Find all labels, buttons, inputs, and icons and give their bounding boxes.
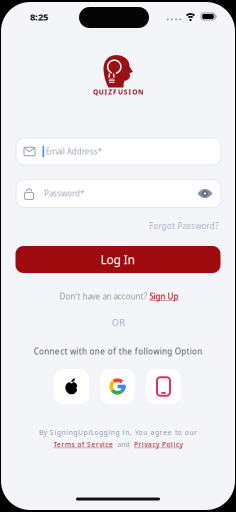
staticText: OR xyxy=(112,316,125,329)
button[interactable]: Sign Up xyxy=(149,291,178,302)
staticText: By SigningUp/Logging in, You agree to ou… xyxy=(39,428,197,437)
button[interactable]: Sign in with Apple xyxy=(54,369,89,404)
button[interactable]: Log In xyxy=(15,246,220,273)
button[interactable]: Email Address* xyxy=(16,138,221,165)
staticText: QUIZFUSION xyxy=(93,88,143,96)
staticText: Sign Up xyxy=(149,291,178,302)
staticText: Terms of Service xyxy=(53,440,113,449)
staticText: Email Address* xyxy=(46,146,102,157)
staticText: Don't have an account? xyxy=(59,291,146,302)
button[interactable]: Forgot Password? xyxy=(149,221,218,231)
button[interactable]: Sign in with Phone xyxy=(146,369,181,404)
button[interactable]: Sign in with Google xyxy=(100,369,135,404)
staticText: Forgot Password? xyxy=(149,221,218,231)
staticText: and xyxy=(117,440,129,449)
staticText: Connect with one of the following Option xyxy=(34,346,202,357)
button[interactable]: Show password xyxy=(194,183,215,204)
button[interactable]: Terms of Service xyxy=(53,440,113,449)
button[interactable]: Privacy Policy xyxy=(134,440,182,449)
staticText: Password* xyxy=(44,188,84,199)
staticText: Log In xyxy=(100,251,135,267)
button[interactable]: Password* xyxy=(16,179,221,207)
staticText: 8:25 xyxy=(30,11,48,23)
staticText: Privacy Policy xyxy=(134,440,182,449)
